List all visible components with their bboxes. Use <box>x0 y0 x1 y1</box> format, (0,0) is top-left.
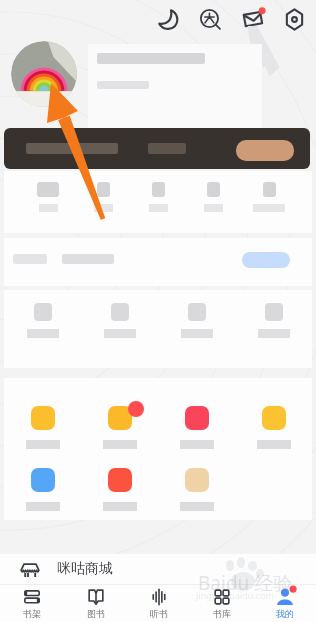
button[interactable]: Messages <box>232 0 273 39</box>
button[interactable] <box>180 406 214 449</box>
button[interactable]: Profile avatar <box>11 41 77 107</box>
staticText: 咪咕商城 <box>57 560 113 578</box>
button[interactable]: 书架 <box>0 585 64 622</box>
button[interactable] <box>26 468 60 511</box>
button[interactable] <box>241 171 296 212</box>
button[interactable] <box>186 171 241 212</box>
button[interactable] <box>103 406 137 449</box>
button[interactable]: Text size <box>190 0 231 39</box>
button[interactable] <box>88 44 262 140</box>
button[interactable] <box>26 406 60 449</box>
button[interactable] <box>4 290 81 338</box>
button[interactable] <box>242 252 290 268</box>
button[interactable] <box>235 290 312 338</box>
staticText: Baidu 经验 <box>198 570 293 596</box>
staticText: 书库 <box>213 608 231 619</box>
button[interactable]: 我的 <box>253 585 316 622</box>
staticText: 书架 <box>23 608 41 619</box>
button[interactable] <box>158 290 235 338</box>
button[interactable]: 图书 <box>64 585 127 622</box>
button[interactable] <box>4 128 310 169</box>
staticText: 听书 <box>150 608 168 619</box>
button[interactable] <box>103 468 137 511</box>
button[interactable] <box>131 171 186 212</box>
button[interactable]: 咪咕商城 <box>20 554 316 584</box>
staticText: 我的 <box>276 608 294 619</box>
button[interactable] <box>180 468 214 511</box>
button[interactable] <box>20 171 76 212</box>
button[interactable]: 书库 <box>190 585 253 622</box>
staticText: jingyan.baidu.com <box>196 589 274 601</box>
button[interactable] <box>81 290 158 338</box>
button[interactable]: Night mode <box>148 0 189 39</box>
staticText: 图书 <box>87 608 105 619</box>
button[interactable]: Settings <box>274 0 315 39</box>
button[interactable] <box>76 171 131 212</box>
button[interactable] <box>257 406 291 449</box>
button[interactable]: 听书 <box>127 585 190 622</box>
